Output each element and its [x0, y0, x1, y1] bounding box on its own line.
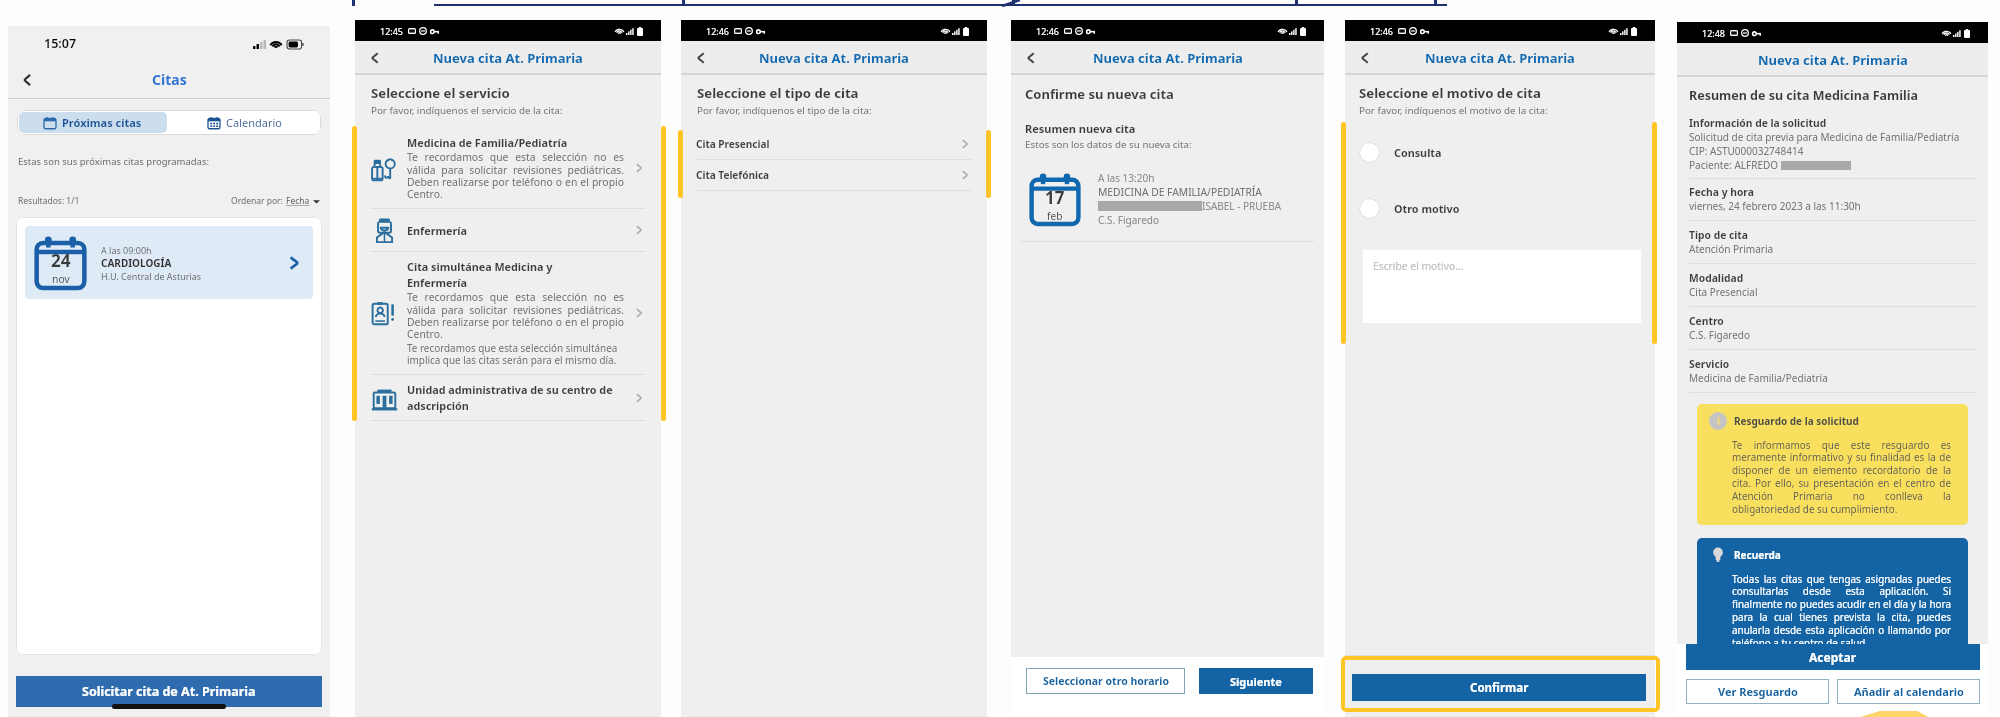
- button[interactable]: Añadir al calendario: [1837, 679, 1980, 704]
- staticText: Centro: [1689, 314, 1724, 328]
- staticText: Otro motivo: [1394, 201, 1460, 216]
- staticText: Servicio: [1689, 357, 1730, 371]
- staticText: Solicitar cita de At. Primaria: [82, 683, 256, 700]
- button[interactable]: Atrás: [364, 47, 386, 69]
- staticText: Calendario: [226, 115, 282, 130]
- staticText: viernes, 24 febrero 2023 a las 11:30h: [1689, 199, 1861, 213]
- staticText: Por favor, indíquenos el motivo de la ci…: [1359, 104, 1548, 117]
- staticText: Seleccione el servicio: [371, 84, 510, 102]
- staticText: Cita Telefónica: [696, 168, 958, 182]
- staticText: Confirmar: [1470, 680, 1529, 696]
- staticText: Estos son los datos de su nueva cita:: [1025, 138, 1192, 151]
- staticText: Nueva cita At. Primaria: [433, 49, 583, 67]
- staticText: CARDIOLOGÍA: [101, 256, 172, 270]
- staticText: Confirme su nueva cita: [1025, 85, 1174, 103]
- button[interactable]: Seleccionar otro horario: [1026, 668, 1185, 694]
- staticText: Atención Primaria: [1689, 242, 1774, 256]
- staticText: Te recordamos que esta selección no es v…: [407, 150, 624, 201]
- button[interactable]: Solicitar cita de At. Primaria: [16, 676, 322, 707]
- staticText: A las 09:00h: [101, 244, 152, 256]
- staticText: A las 13:20h: [1098, 171, 1155, 185]
- staticText: Citas: [152, 70, 187, 89]
- staticText: H.U. Central de Asturias: [101, 270, 202, 282]
- button[interactable]: Siguiente: [1199, 668, 1313, 694]
- staticText: Ordenar por:: [231, 195, 286, 207]
- button[interactable]: Ordenar por:: [231, 195, 320, 207]
- staticText: ISABEL - PRUEBA: [1202, 199, 1282, 213]
- staticText: Tipo de cita: [1689, 228, 1749, 242]
- staticText: 17: [1045, 186, 1065, 209]
- staticText: Siguiente: [1230, 674, 1282, 689]
- staticText: Resguardo de la solicitud: [1734, 414, 1859, 428]
- staticText: Te recordamos que esta selección simultá…: [407, 341, 626, 367]
- button[interactable]: Calendario: [169, 110, 321, 135]
- staticText: Estas son sus próximas citas programadas…: [18, 155, 210, 168]
- staticText: Ver Resguardo: [1718, 684, 1798, 699]
- button[interactable]: Atrás: [1354, 47, 1376, 69]
- staticText: Recuerda: [1734, 548, 1781, 562]
- staticText: nov: [52, 272, 70, 286]
- button[interactable]: Aceptar: [1686, 644, 1980, 670]
- button[interactable]: Confirmar: [1352, 674, 1646, 701]
- staticText: Próximas citas: [62, 115, 142, 130]
- staticText: 12:46: [706, 25, 730, 37]
- staticText: Nueva cita At. Primaria: [1093, 49, 1243, 67]
- staticText: Te recordamos que esta selección no es v…: [407, 290, 624, 341]
- button[interactable]: 24: [25, 226, 313, 299]
- staticText: Añadir al calendario: [1854, 684, 1964, 699]
- staticText: Por favor, indíquenos el tipo de la cita…: [697, 104, 872, 117]
- staticText: Te informamos que este resguardo es mera…: [1732, 438, 1951, 516]
- button[interactable]: Escribe el motivo: [1363, 250, 1641, 323]
- button[interactable]: Enfermería: [355, 209, 661, 251]
- button[interactable]: Atrás: [1020, 47, 1042, 69]
- staticText: MEDICINA DE FAMILIA/PEDIATRÍA: [1098, 185, 1262, 199]
- staticText: Cita Presencial: [696, 137, 958, 151]
- staticText: 15:07: [44, 35, 77, 52]
- button[interactable]: Atrás: [17, 70, 37, 90]
- button[interactable]: Ver Resguardo: [1686, 679, 1829, 704]
- staticText: Paciente: ALFREDO: [1689, 158, 1781, 172]
- staticText: Cita Presencial: [1689, 285, 1758, 299]
- staticText: 24: [51, 249, 71, 272]
- staticText: Unidad administrativa de su centro de ad…: [407, 382, 613, 413]
- staticText: Medicina de Familia/Pediatría: [1689, 371, 1828, 385]
- staticText: Nueva cita At. Primaria: [1425, 49, 1575, 67]
- staticText: Por favor, indíquenos el servicio de la …: [371, 104, 563, 117]
- button[interactable]: Medicina de Familia/Pediatría: [355, 128, 661, 208]
- staticText: Aceptar: [1809, 649, 1857, 665]
- staticText: 12:45: [380, 25, 404, 37]
- button[interactable]: Cita simultánea Medicina y Enfermería: [355, 252, 661, 374]
- staticText: Medicina de Familia/Pediatría: [407, 135, 568, 150]
- button[interactable]: Cita Telefónica: [681, 160, 987, 190]
- staticText: Nueva cita At. Primaria: [1758, 51, 1908, 69]
- staticText: Información de la solicitud: [1689, 116, 1827, 130]
- staticText: Seleccione el motivo de cita: [1359, 84, 1541, 102]
- staticText: Seleccionar otro horario: [1043, 674, 1169, 688]
- button[interactable]: Cita Presencial: [681, 129, 987, 159]
- staticText: Enfermería: [407, 223, 468, 238]
- staticText: feb: [1047, 209, 1063, 223]
- staticText: Consulta: [1394, 145, 1442, 160]
- staticText: Seleccione el tipo de cita: [697, 84, 859, 102]
- staticText: Resumen de su cita Medicina Familia: [1689, 87, 1918, 104]
- button[interactable]: Consulta: [1345, 136, 1655, 169]
- staticText: C.S. Figaredo: [1689, 328, 1751, 342]
- staticText: 12:48: [1702, 27, 1726, 39]
- staticText: CIP: ASTU000032748414: [1689, 144, 1804, 158]
- staticText: 12:46: [1370, 25, 1394, 37]
- staticText: Escribe el motivo...: [1373, 259, 1464, 273]
- staticText: Resumen nueva cita: [1025, 121, 1136, 136]
- button[interactable]: Próximas citas: [19, 112, 167, 133]
- staticText: Fecha y hora: [1689, 185, 1754, 199]
- staticText: 12:46: [1036, 25, 1060, 37]
- button[interactable]: Otro motivo: [1345, 192, 1655, 225]
- staticText: Cita simultánea Medicina y Enfermería: [407, 259, 553, 290]
- button[interactable]: Unidad administrativa de su centro de ad…: [355, 375, 661, 420]
- staticText: Modalidad: [1689, 271, 1744, 285]
- staticText: Todas las citas que tengas asignadas pue…: [1732, 572, 1951, 650]
- staticText: Nueva cita At. Primaria: [759, 49, 909, 67]
- staticText: Fecha: [286, 195, 310, 207]
- staticText: Solicitud de cita previa para Medicina d…: [1689, 130, 1960, 144]
- staticText: C.S. Figaredo: [1098, 213, 1160, 227]
- button[interactable]: Atrás: [690, 47, 712, 69]
